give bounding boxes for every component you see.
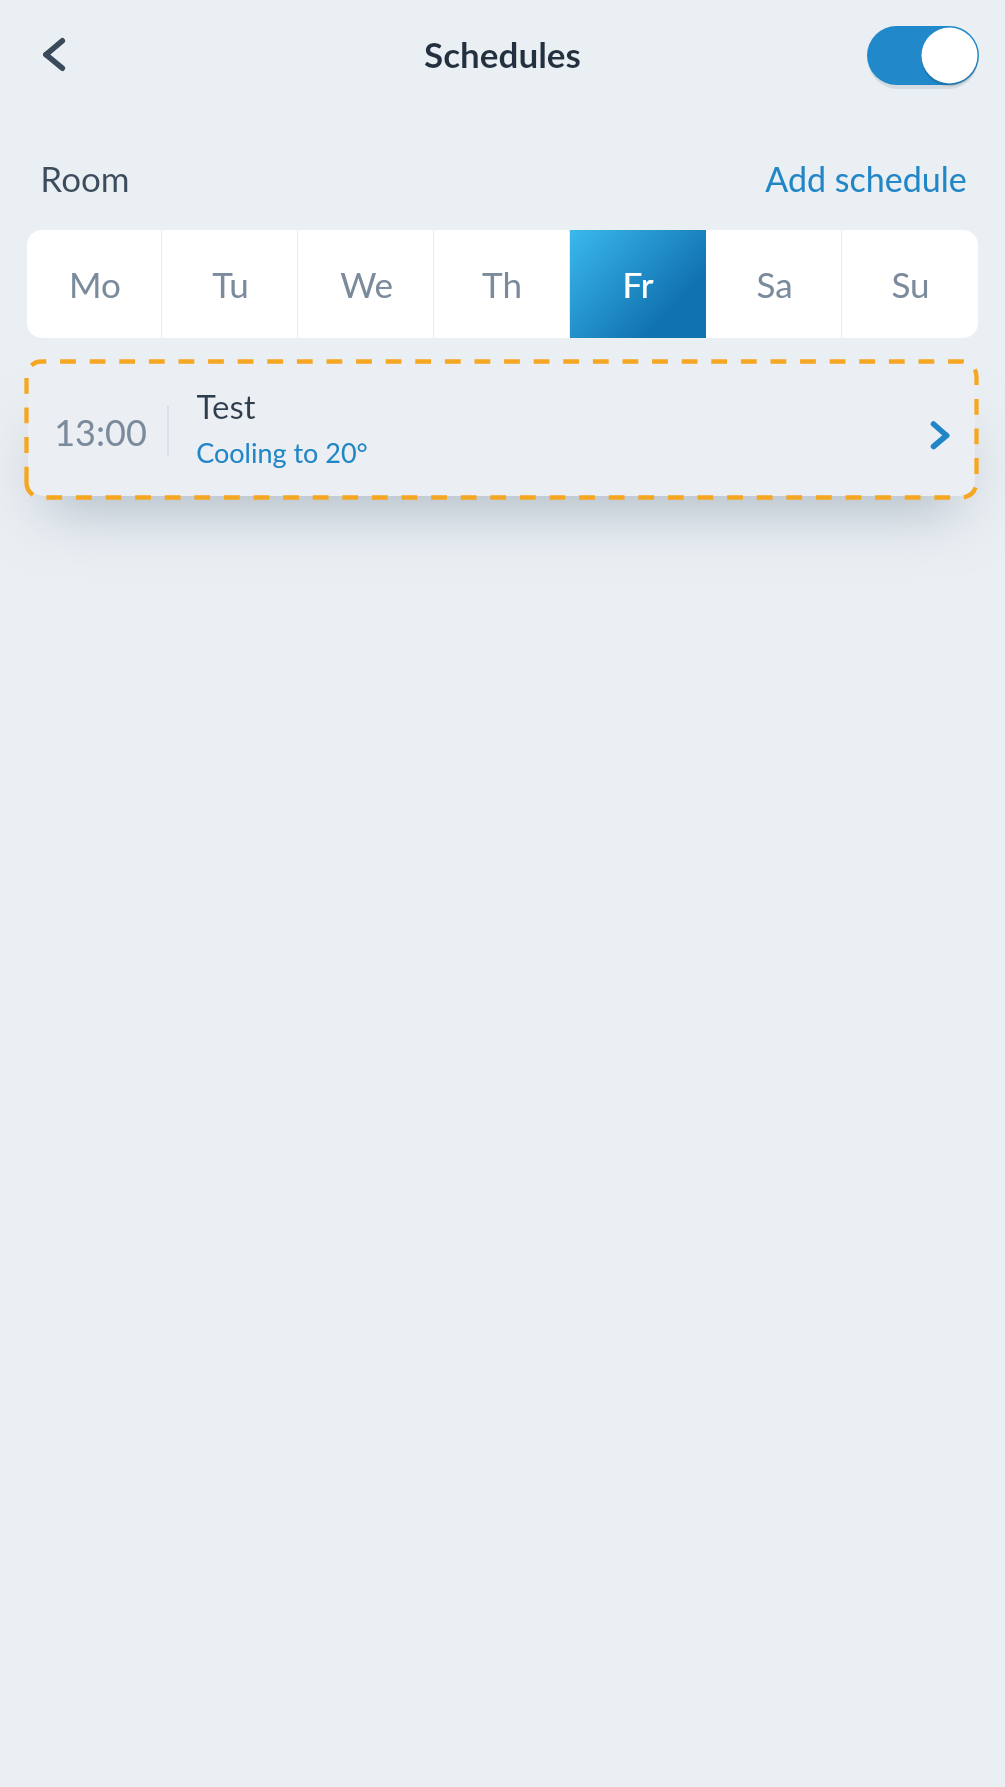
staticText: We: [340, 263, 393, 305]
staticText: Schedules: [424, 33, 581, 75]
staticText: Tu: [212, 263, 249, 305]
button[interactable]: 13:00: [28, 363, 975, 496]
button[interactable]: Mo: [27, 230, 162, 338]
staticText: Mo: [69, 263, 121, 305]
button[interactable]: Th: [434, 230, 570, 338]
button[interactable]: Back: [22, 22, 86, 86]
button[interactable]: Tu: [162, 230, 298, 338]
button[interactable]: We: [298, 230, 434, 338]
staticText: Room: [40, 157, 130, 199]
staticText: Sa: [756, 263, 793, 305]
button[interactable]: Fr: [570, 230, 706, 338]
button[interactable]: Su: [842, 230, 978, 338]
staticText: Add schedule: [765, 158, 967, 199]
staticText: 13:00: [54, 410, 147, 453]
staticText: Su: [891, 263, 930, 305]
button[interactable]: Sa: [706, 230, 842, 338]
staticText: Th: [482, 263, 522, 305]
staticText: Cooling to 20°: [196, 436, 368, 468]
button[interactable]: Schedules enabled: [867, 26, 979, 85]
staticText: Test: [196, 386, 256, 426]
staticText: Fr: [622, 263, 654, 305]
button[interactable]: Add schedule: [765, 158, 967, 199]
